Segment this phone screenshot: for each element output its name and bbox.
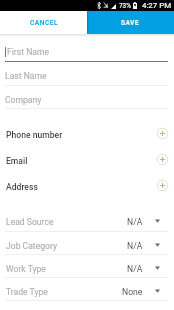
button[interactable]: Company [0,86,174,109]
staticText: Last Name [5,71,47,81]
staticText: N/A [127,217,143,227]
staticText: 4:27 PM [142,1,172,10]
button[interactable]: Last Name [0,62,174,86]
staticText: Trade Type [6,287,48,297]
button[interactable]: Lead Source [0,208,174,232]
button[interactable]: First Name [0,38,174,62]
button[interactable]: SAVE [87,11,174,34]
staticText: None [122,287,143,297]
staticText: SAVE [121,19,140,27]
button[interactable]: Job Category [0,232,174,255]
button[interactable]: Add Phone number [156,127,169,140]
staticText: Lead Source [6,217,54,227]
staticText: N/A [127,264,143,274]
staticText: Job Category [6,241,58,251]
staticText: First Name [7,47,50,57]
staticText: Phone number [6,130,63,140]
button[interactable]: Add Address [156,179,169,192]
staticText: Email [6,156,28,166]
staticText: CANCEL [30,19,58,27]
staticText: Address [6,182,38,192]
button[interactable]: CANCEL [0,11,87,34]
button[interactable]: Trade Type [0,278,174,301]
staticText: Company [5,95,42,105]
button[interactable]: Work Type [0,255,174,278]
staticText: Work Type [6,264,46,274]
button[interactable]: Add Email [156,153,169,166]
staticText: N/A [127,241,143,251]
staticText: 73% [119,2,131,10]
